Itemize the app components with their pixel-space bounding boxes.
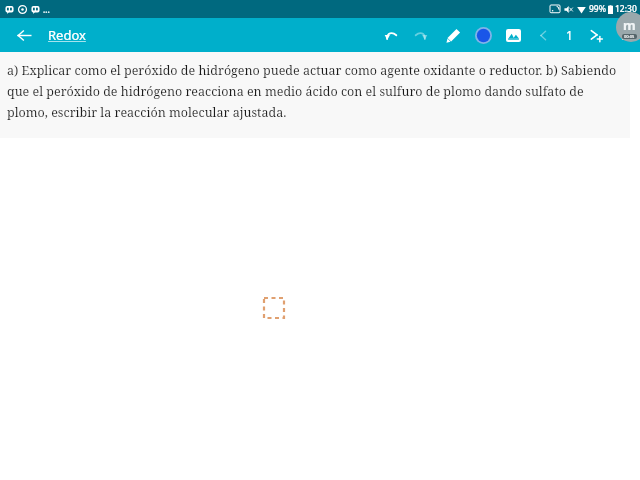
staticText: 00:05: [624, 34, 635, 39]
button[interactable]: Back: [12, 23, 36, 47]
button[interactable]: Recording overlay: [616, 12, 640, 42]
staticText: a) Explicar como el peróxido de hidrógen…: [7, 62, 622, 121]
button[interactable]: Color: [470, 22, 496, 48]
button[interactable]: Pen: [440, 22, 466, 48]
button[interactable]: Redox: [48, 26, 86, 44]
button[interactable]: 1: [556, 22, 582, 48]
button[interactable]: Add page: [582, 22, 608, 48]
staticText: ...: [43, 4, 50, 15]
button[interactable]: More options: [610, 22, 636, 48]
button[interactable]: Insert element placeholder: [264, 298, 284, 318]
button[interactable]: Previous page: [530, 22, 556, 48]
staticText: 99%: [589, 3, 606, 15]
staticText: m: [623, 16, 636, 34]
button[interactable]: Redo: [408, 22, 434, 48]
button[interactable]: Undo: [378, 22, 404, 48]
staticText: Redox: [48, 26, 86, 44]
staticText: 1: [566, 27, 573, 43]
button[interactable]: Insert image: [500, 22, 526, 48]
staticText: 12:30: [615, 3, 637, 15]
